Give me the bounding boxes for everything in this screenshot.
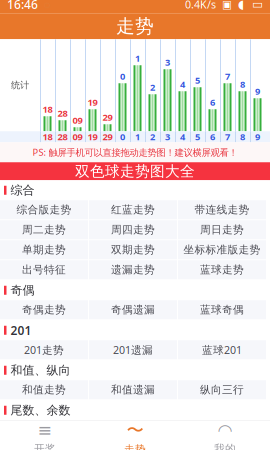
button[interactable]: 蓝球201 (178, 340, 266, 359)
staticText: 19 (87, 131, 97, 143)
staticText: 3 (165, 56, 170, 68)
staticText: 带连线走势 (194, 203, 249, 216)
staticText: 蓝球奇偶 (200, 303, 244, 316)
staticText: 我的 (214, 442, 236, 450)
button[interactable]: 综合版走势 (0, 200, 88, 219)
staticText: 和值走势 (22, 383, 66, 396)
staticText: 8 (240, 78, 245, 90)
staticText: 周二走势 (22, 223, 66, 236)
staticText: 遗漏走势 (111, 263, 155, 276)
staticText: ▣ (216, 0, 238, 10)
staticText: 28 (57, 107, 67, 119)
staticText: ≡ (37, 420, 52, 440)
staticText: 开奖 (34, 442, 56, 450)
button[interactable]: ◠ (180, 421, 270, 450)
staticText: 奇偶遗漏 (111, 303, 155, 316)
button[interactable]: 和值遗漏 (89, 380, 177, 399)
staticText: 18 (42, 131, 52, 143)
staticText: 8 (240, 131, 245, 143)
staticText: ◖ (238, 0, 244, 11)
staticText: PS: 触屏手机可以直接拖动走势图！建议横屏观看！ (32, 146, 237, 158)
button[interactable]: 和值走势 (0, 380, 88, 399)
staticText: 走势 (116, 15, 154, 38)
staticText: 0 (120, 70, 125, 82)
staticText: 5 (195, 131, 200, 143)
staticText: 〜 (126, 420, 143, 441)
staticText: 和值、纵向 (10, 363, 70, 378)
button[interactable]: 带连线走势 (178, 200, 266, 219)
staticText: 红蓝走势 (111, 203, 155, 216)
staticText: 16:46 (7, 0, 38, 12)
staticText: 统计 (11, 79, 29, 91)
button[interactable]: 遗漏走势 (89, 260, 177, 279)
button[interactable]: 奇偶遗漏 (89, 300, 177, 319)
staticText: 09 (72, 131, 82, 143)
staticText: 5 (195, 74, 200, 86)
staticText: ◠ (217, 420, 232, 440)
staticText: 坐标标准版走势 (183, 243, 260, 256)
staticText: 纵向三行 (200, 383, 244, 396)
button[interactable]: 蓝球奇偶 (178, 300, 266, 319)
staticText: 19 (87, 96, 97, 108)
staticText: 7 (225, 131, 230, 143)
staticText: 周日走势 (200, 223, 244, 236)
staticText: 1 (135, 131, 140, 143)
staticText: 2 (150, 81, 155, 93)
staticText: 和值遗漏 (111, 383, 155, 396)
button[interactable]: 红蓝走势 (89, 200, 177, 219)
button[interactable]: 出号特征 (0, 260, 88, 279)
staticText: 201遗漏 (113, 343, 153, 357)
staticText: 综合版走势 (16, 203, 71, 216)
staticText: 09 (72, 114, 82, 126)
button[interactable]: 201走势 (0, 340, 88, 359)
staticText: ▭ (244, 0, 263, 11)
staticText: 尾数、余数 (10, 403, 70, 418)
staticText: 29 (102, 111, 112, 123)
staticText: 0 (120, 131, 125, 143)
staticText: 奇偶走势 (22, 303, 66, 316)
staticText: 29 (102, 131, 112, 143)
staticText: 201 (10, 322, 31, 338)
button[interactable]: 单期走势 (0, 240, 88, 259)
staticText: 6 (210, 131, 215, 143)
staticText: 6 (210, 96, 215, 108)
staticText: 4 (180, 131, 185, 143)
button[interactable]: 周日走势 (178, 220, 266, 239)
staticText: 蓝球201 (202, 343, 242, 357)
button[interactable]: 201遗漏 (89, 340, 177, 359)
staticText: 1 (135, 52, 140, 64)
button[interactable]: 纵向三行 (178, 380, 266, 399)
button[interactable]: 周四走势 (89, 220, 177, 239)
staticText: 201走势 (24, 343, 64, 357)
staticText: 单期走势 (22, 243, 66, 256)
staticText: 走势 (124, 443, 146, 450)
staticText: 4 (180, 78, 185, 90)
button[interactable]: ≡ (0, 421, 90, 450)
staticText: 周四走势 (111, 223, 155, 236)
button[interactable]: 坐标标准版走势 (178, 240, 266, 259)
staticText: 0.4K/s (185, 0, 216, 11)
staticText: 9 (255, 131, 260, 143)
staticText: 蓝球走势 (200, 263, 244, 276)
button[interactable]: 奇偶走势 (0, 300, 88, 319)
staticText: 奇偶 (10, 283, 34, 298)
staticText: 18 (42, 103, 52, 115)
staticText: 双色球走势图大全 (75, 162, 195, 180)
staticText: 28 (57, 131, 67, 143)
staticText: 2 (150, 131, 155, 143)
button[interactable]: 双期走势 (89, 240, 177, 259)
staticText: 综合 (10, 183, 34, 198)
staticText: 双期走势 (111, 243, 155, 256)
staticText: 出号特征 (22, 263, 66, 276)
button[interactable]: 周二走势 (0, 220, 88, 239)
staticText: 7 (225, 70, 230, 82)
staticText: 3 (165, 131, 170, 143)
button[interactable]: 〜 (90, 421, 180, 450)
button[interactable]: 蓝球走势 (178, 260, 266, 279)
staticText: 9 (255, 85, 260, 97)
